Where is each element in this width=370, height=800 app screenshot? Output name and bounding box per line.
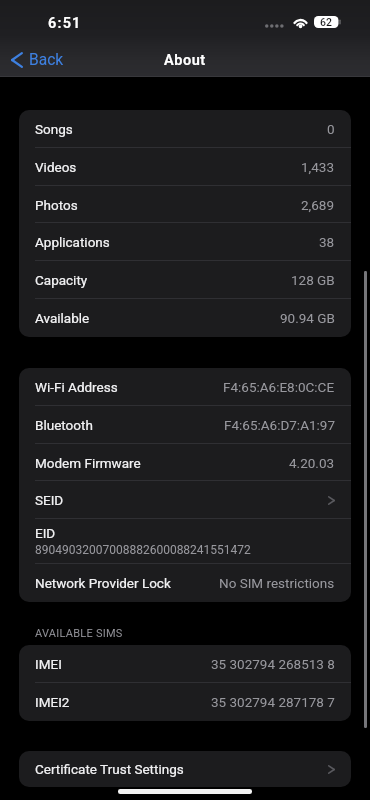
staticText: 38	[319, 234, 335, 250]
staticText: 0	[327, 121, 335, 137]
other: Wi-Fi	[292, 16, 309, 28]
button[interactable]: SEID	[19, 481, 351, 519]
staticText: 2,689	[301, 197, 335, 213]
staticText: F4:65:A6:D7:A1:97	[224, 417, 335, 433]
button[interactable]: Network Provider Lock	[19, 564, 351, 602]
staticText: Capacity	[35, 272, 88, 288]
staticText: 35 302794 268513 8	[211, 656, 335, 672]
staticText: Modem Firmware	[35, 455, 141, 471]
staticText: AVAILABLE SIMS	[35, 627, 123, 640]
button[interactable]: Songs	[19, 110, 351, 148]
staticText: 35 302794 287178 7	[211, 694, 335, 710]
staticText: Wi-Fi Address	[35, 379, 118, 395]
staticText: Certificate Trust Settings	[35, 761, 184, 777]
staticText: Available	[35, 310, 90, 326]
button[interactable]: EID	[19, 519, 351, 564]
staticText: 89049032007008882600088241551472	[35, 543, 251, 557]
staticText: 128 GB	[291, 272, 335, 288]
staticText: Network Provider Lock	[35, 575, 171, 591]
button[interactable]: IMEI2	[19, 683, 351, 721]
staticText: Bluetooth	[35, 417, 93, 433]
other: Cellular signal	[265, 16, 286, 28]
staticText: No SIM restrictions	[219, 575, 335, 591]
button[interactable]: Certificate Trust Settings	[19, 751, 351, 787]
button[interactable]: Modem Firmware	[19, 444, 351, 482]
staticText: 6:51	[48, 15, 82, 32]
staticText: SEID	[35, 492, 64, 508]
staticText: About	[164, 52, 206, 69]
staticText: 90.94 GB	[280, 310, 335, 326]
button[interactable]: Available	[19, 299, 351, 337]
other: Battery 62 percent	[314, 16, 341, 28]
button[interactable]: Applications	[19, 223, 351, 261]
button[interactable]: Wi-Fi Address	[19, 368, 351, 406]
button[interactable]: IMEI	[19, 645, 351, 683]
staticText: 4.20.03	[289, 455, 335, 471]
staticText: Back	[29, 51, 64, 69]
button[interactable]: Photos	[19, 186, 351, 224]
staticText: IMEI	[35, 656, 62, 672]
button[interactable]: Videos	[19, 148, 351, 186]
button[interactable]: Bluetooth	[19, 406, 351, 444]
staticText: F4:65:A6:E8:0C:CE	[223, 379, 335, 395]
staticText: 1,433	[301, 159, 335, 175]
staticText: Songs	[35, 121, 73, 137]
staticText: Photos	[35, 197, 78, 213]
staticText: 62	[320, 16, 332, 28]
staticText: EID	[35, 525, 56, 541]
button[interactable]: Back	[6, 49, 70, 71]
staticText: Videos	[35, 159, 77, 175]
staticText: IMEI2	[35, 694, 70, 710]
staticText: Applications	[35, 234, 110, 250]
button[interactable]: Capacity	[19, 261, 351, 299]
